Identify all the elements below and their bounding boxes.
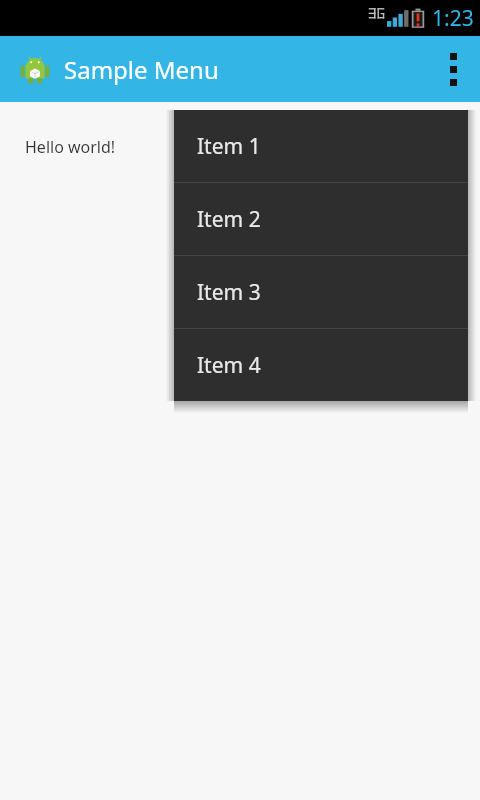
staticText: Item 4 xyxy=(197,351,261,380)
staticText: Hello world! xyxy=(25,136,116,158)
button[interactable]: Item 3 xyxy=(174,256,468,328)
staticText: Sample Menu xyxy=(64,53,219,86)
button[interactable]: Item 2 xyxy=(174,183,468,255)
staticText: 1:23 xyxy=(432,4,474,33)
button[interactable]: More options xyxy=(426,36,480,102)
staticText: Item 2 xyxy=(197,205,261,234)
button[interactable]: Item 4 xyxy=(174,329,468,401)
staticText: Item 1 xyxy=(197,132,261,161)
staticText: Item 3 xyxy=(197,278,261,307)
button[interactable]: Item 1 xyxy=(174,110,468,182)
